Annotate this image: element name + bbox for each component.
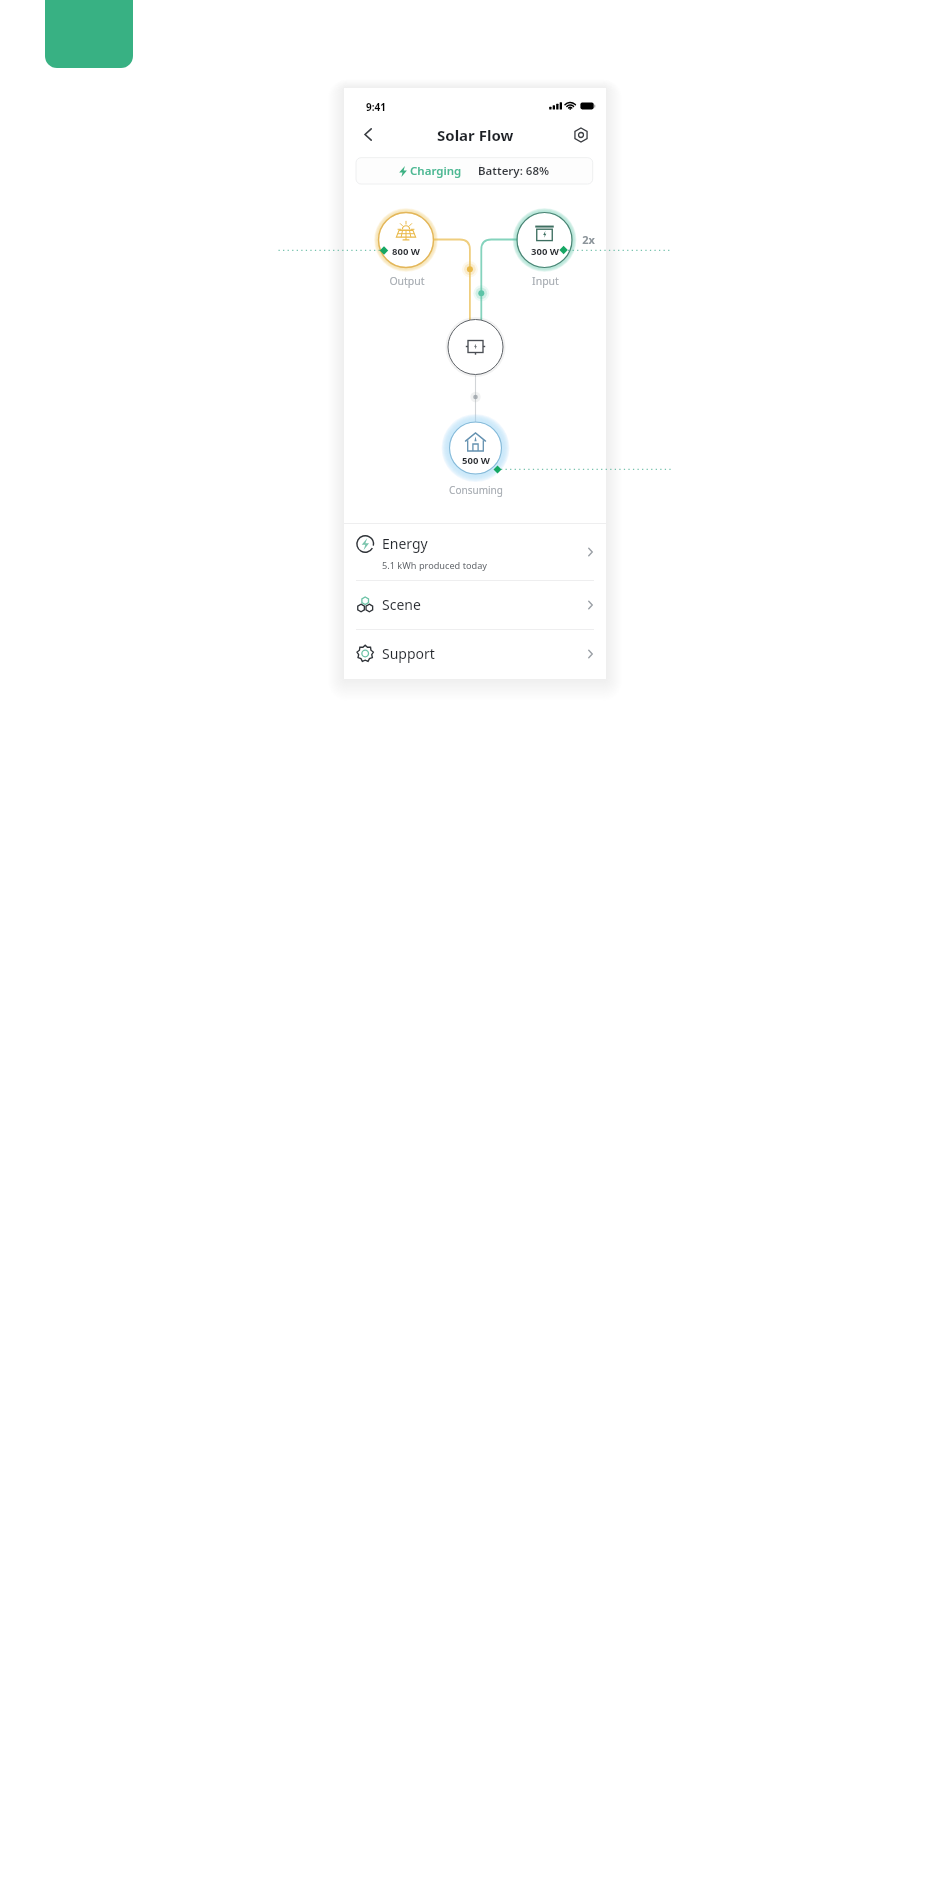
staticText: 9:41 (366, 100, 386, 114)
staticText: Solar Flow (437, 125, 514, 145)
button[interactable]: Energy (344, 523, 606, 580)
button[interactable]: Support (344, 629, 606, 678)
staticText: Input (532, 274, 559, 288)
staticText: 800 W (392, 245, 420, 258)
staticText: Support (382, 644, 435, 663)
button[interactable]: Back (356, 122, 381, 147)
staticText: Output (389, 274, 425, 288)
staticText: 2x (582, 232, 595, 247)
staticText: 500 W (462, 454, 490, 467)
button[interactable]: Charging (356, 158, 593, 184)
staticText: Battery: 68% (478, 163, 550, 179)
staticText: Energy (382, 534, 428, 553)
staticText: Consuming (449, 483, 503, 497)
staticText: 300 W (531, 245, 559, 258)
staticText: Scene (382, 595, 421, 614)
button[interactable]: Settings (568, 122, 593, 147)
staticText: Charging (410, 163, 462, 179)
staticText: 5.1 kWh produced today (382, 559, 488, 572)
button[interactable]: Scene (344, 580, 606, 629)
